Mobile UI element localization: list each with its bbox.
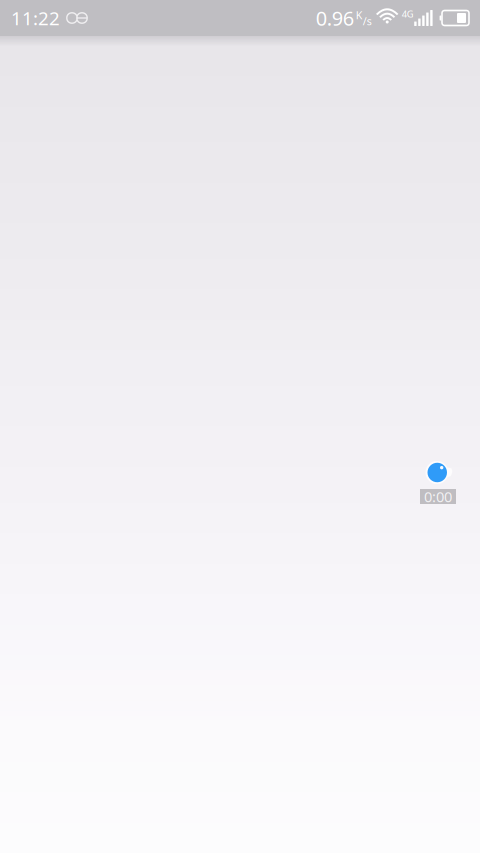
staticText: 11:22 bbox=[11, 6, 60, 30]
staticText: 0:00 bbox=[424, 487, 452, 506]
staticText: K bbox=[356, 8, 363, 22]
button[interactable]: Voice message, 0:00 bbox=[420, 460, 465, 504]
staticText: 0.96 bbox=[316, 5, 354, 31]
staticText: /s bbox=[363, 14, 372, 28]
staticText: 4G bbox=[402, 8, 414, 20]
